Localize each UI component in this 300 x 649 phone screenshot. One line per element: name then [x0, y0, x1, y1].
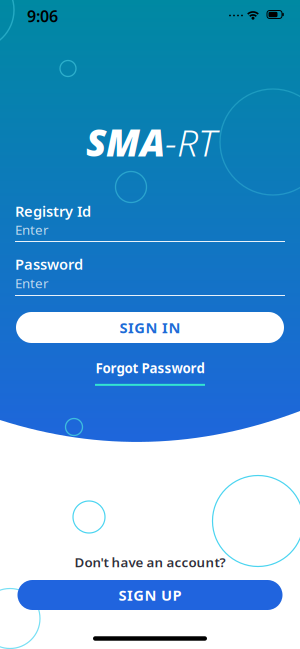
staticText: Password	[15, 254, 83, 274]
staticText: Enter	[15, 221, 49, 238]
staticText: Don't have an account?	[74, 553, 225, 571]
staticText: 9:06	[27, 5, 58, 27]
staticText: Enter	[15, 274, 49, 292]
staticText: SIGN UP	[119, 585, 181, 605]
button[interactable]: SIGN UP	[17, 580, 282, 610]
button[interactable]: Forgot Password	[95, 359, 205, 386]
staticText: SIGN IN	[120, 318, 180, 337]
staticText: Registry Id	[15, 201, 91, 221]
button[interactable]: SIGN IN	[16, 312, 284, 343]
staticText: Forgot Password	[95, 359, 204, 377]
staticText: SMA-RT	[86, 117, 216, 167]
